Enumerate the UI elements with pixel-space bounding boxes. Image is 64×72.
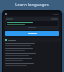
button[interactable] [5, 53, 59, 56]
button[interactable] [5, 31, 59, 36]
button[interactable] [5, 43, 59, 46]
button[interactable] [6, 21, 58, 26]
button[interactable] [5, 58, 59, 61]
button[interactable] [3, 38, 61, 42]
staticText: Learn languages [15, 2, 49, 8]
button[interactable] [5, 48, 59, 51]
button[interactable] [5, 63, 59, 66]
